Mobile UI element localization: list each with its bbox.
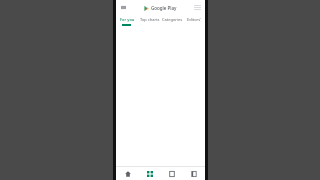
staticText: For you	[120, 17, 135, 22]
button[interactable]: Apps	[139, 167, 161, 180]
button[interactable]: Games	[116, 167, 139, 180]
button[interactable]: Books	[183, 167, 205, 180]
staticText: Top charts	[140, 17, 160, 22]
button[interactable]: For you	[116, 15, 139, 24]
button[interactable]: Google Play	[144, 5, 177, 11]
button[interactable]: Account	[193, 3, 202, 12]
button[interactable]: Menu	[119, 3, 128, 12]
button[interactable]: Categories	[161, 15, 183, 24]
button[interactable]: Movies	[161, 167, 183, 180]
staticText: Categories	[162, 17, 183, 22]
staticText: Editors'	[187, 17, 202, 22]
staticText: Google Play	[151, 5, 177, 11]
button[interactable]: Editors'	[183, 15, 205, 24]
button[interactable]: Top charts	[139, 15, 161, 24]
